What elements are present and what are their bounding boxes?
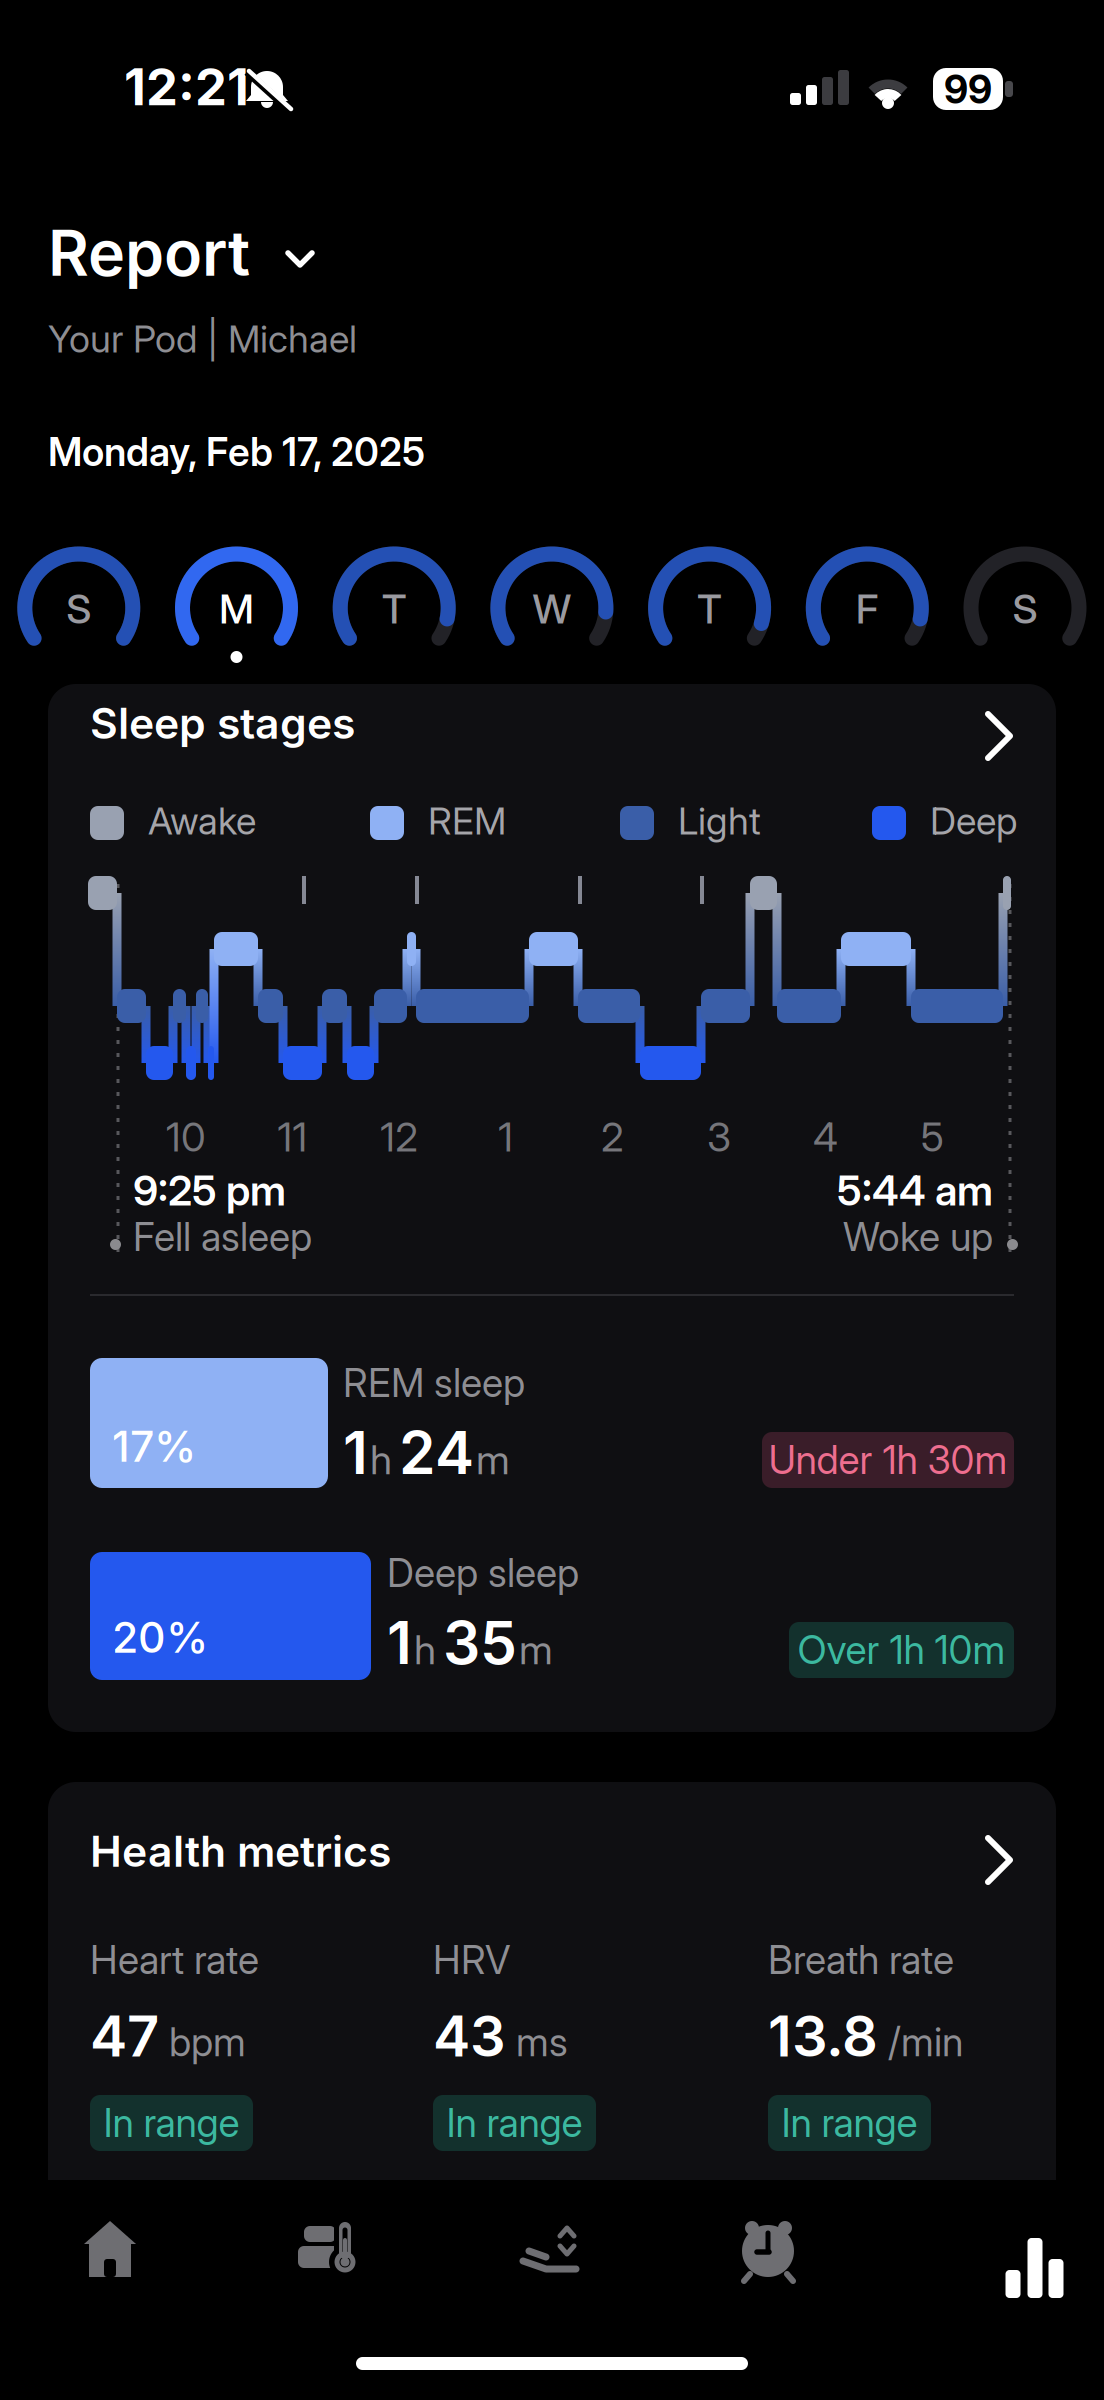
staticText: ms	[516, 2019, 568, 2065]
staticText: 12:21	[124, 57, 249, 117]
staticText: Monday, Feb 17, 2025	[48, 429, 425, 475]
staticText: 43	[433, 2003, 506, 2069]
staticText: 1	[387, 1608, 412, 1677]
button[interactable]: Day S	[4, 533, 154, 683]
staticText: Report	[48, 216, 250, 290]
staticText: h	[370, 1436, 392, 1483]
button[interactable]: Alarms	[721, 2200, 821, 2300]
staticText: 10	[166, 1113, 206, 1161]
staticText: 1	[498, 1113, 513, 1161]
staticText: /min	[888, 2019, 963, 2065]
button[interactable]: Elevation	[501, 2200, 601, 2300]
staticText: REM sleep	[343, 1360, 525, 1406]
staticText: 3	[707, 1113, 731, 1161]
button[interactable]: Sleep stages	[90, 698, 1014, 762]
button[interactable]: Report	[941, 2200, 1041, 2300]
staticText: Light	[678, 799, 761, 843]
button[interactable]: Day T	[635, 533, 785, 683]
staticText: 35	[443, 1608, 517, 1677]
staticText: m	[519, 1626, 553, 1673]
staticText: S	[1012, 585, 1037, 633]
staticText: Sleep stages	[90, 698, 355, 748]
button[interactable]: Day T	[319, 533, 469, 683]
staticText: Woke up	[843, 1214, 993, 1260]
button[interactable]: Day F	[792, 533, 942, 683]
staticText: 4	[813, 1113, 838, 1161]
button[interactable]: Health metrics	[90, 1826, 1014, 1890]
staticText: S	[66, 585, 91, 633]
staticText: 17%	[112, 1421, 196, 1471]
staticText: Heart rate	[90, 1937, 259, 1983]
staticText: 1	[343, 1418, 368, 1487]
staticText: 99	[944, 67, 992, 112]
staticText: bpm	[169, 2019, 246, 2065]
staticText: 47	[90, 2003, 159, 2069]
staticText: 2	[601, 1113, 624, 1161]
staticText: T	[382, 585, 407, 633]
staticText: Fell asleep	[133, 1214, 312, 1260]
staticText: 20%	[112, 1612, 208, 1662]
staticText: Deep	[930, 799, 1017, 843]
button[interactable]: Day S	[950, 533, 1100, 683]
staticText: REM	[428, 799, 506, 843]
staticText: Under 1h 30m	[768, 1437, 1007, 1483]
button[interactable]: Day M	[161, 533, 311, 683]
staticText: Breath rate	[768, 1937, 954, 1983]
staticText: Deep sleep	[387, 1550, 579, 1596]
staticText: 24	[399, 1418, 474, 1487]
staticText: Health metrics	[90, 1826, 391, 1876]
staticText: M	[219, 585, 254, 633]
staticText: T	[697, 585, 722, 633]
staticText: F	[856, 585, 879, 633]
staticText: W	[532, 585, 571, 633]
button[interactable]: Pod temperature	[280, 2200, 380, 2300]
button[interactable]: Report	[48, 216, 314, 290]
staticText: Your Pod | Michael	[48, 317, 357, 361]
staticText: h	[414, 1626, 436, 1673]
staticText: 11	[278, 1113, 308, 1161]
staticText: Awake	[148, 799, 256, 843]
button[interactable]: Day W	[477, 533, 627, 683]
staticText: 9:25 pm	[133, 1166, 286, 1215]
staticText: 5:44 am	[837, 1166, 993, 1215]
staticText: m	[476, 1436, 510, 1483]
staticText: 5	[921, 1113, 944, 1161]
staticText: 12	[380, 1113, 418, 1161]
button[interactable]: Home	[60, 2200, 160, 2300]
staticText: Over 1h 10m	[797, 1627, 1005, 1673]
staticText: In range	[781, 2100, 917, 2146]
staticText: 13.8	[768, 2003, 878, 2069]
staticText: In range	[103, 2100, 239, 2146]
staticText: In range	[446, 2100, 582, 2146]
staticText: HRV	[433, 1937, 510, 1983]
